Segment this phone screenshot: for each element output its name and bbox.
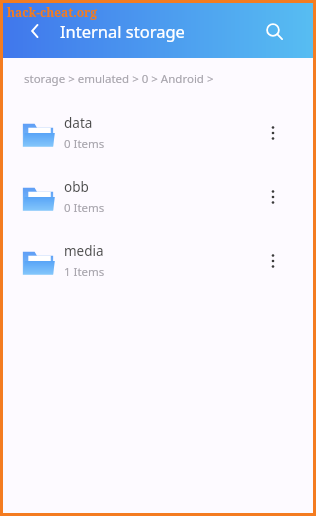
staticText: storage > emulated > 0 > Android >: [24, 71, 214, 87]
staticText: 0 Items: [64, 136, 105, 152]
button[interactable]: Back: [17, 13, 53, 49]
staticText: 0 Items: [64, 200, 105, 216]
staticText: data: [64, 114, 93, 132]
staticText: 1 Items: [64, 264, 105, 280]
button[interactable]: obb: [3, 165, 313, 229]
button[interactable]: Search: [256, 13, 292, 49]
button[interactable]: media: [3, 229, 313, 293]
button[interactable]: More options for obb: [253, 177, 293, 217]
staticText: media: [64, 242, 104, 260]
button[interactable]: More options for media: [253, 241, 293, 281]
staticText: obb: [64, 178, 89, 196]
button[interactable]: data: [3, 101, 313, 165]
button[interactable]: More options for data: [253, 113, 293, 153]
staticText: hack-cheat.org: [7, 4, 98, 20]
staticText: Internal storage: [60, 20, 185, 42]
